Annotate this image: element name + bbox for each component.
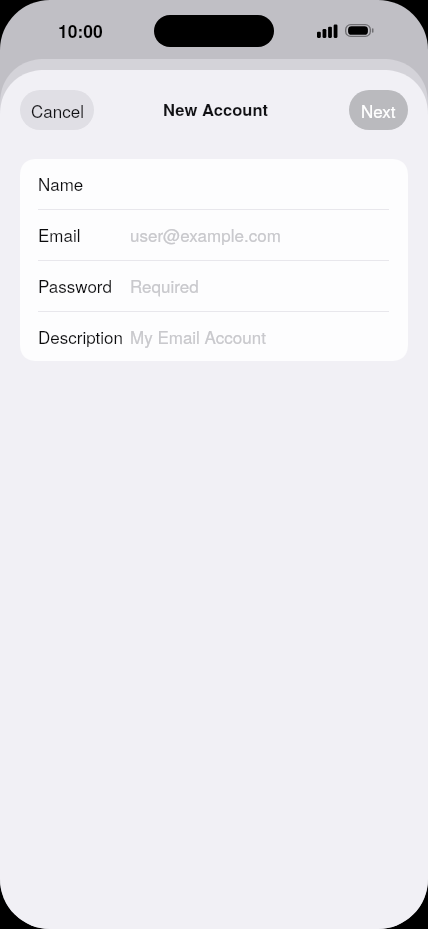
staticText: New Account bbox=[163, 97, 269, 121]
staticText: Next bbox=[361, 98, 396, 122]
button[interactable]: Next bbox=[349, 90, 408, 130]
other: Cellular signal bbox=[317, 24, 339, 38]
staticText: Name bbox=[38, 171, 84, 195]
button[interactable]: Password bbox=[20, 261, 408, 311]
button[interactable]: Email bbox=[20, 210, 408, 260]
staticText: 10:00 bbox=[58, 18, 103, 43]
staticText: My Email Account bbox=[130, 324, 266, 348]
button[interactable]: Cancel bbox=[20, 90, 94, 130]
staticText: user@example.com bbox=[130, 222, 281, 246]
other: Battery bbox=[345, 24, 376, 37]
button[interactable]: Description bbox=[20, 312, 408, 361]
staticText: Description bbox=[38, 324, 123, 348]
staticText: Password bbox=[38, 273, 112, 297]
staticText: Email bbox=[38, 222, 81, 246]
button[interactable]: Name bbox=[20, 159, 408, 209]
staticText: Cancel bbox=[31, 98, 84, 122]
staticText: Required bbox=[130, 273, 199, 297]
